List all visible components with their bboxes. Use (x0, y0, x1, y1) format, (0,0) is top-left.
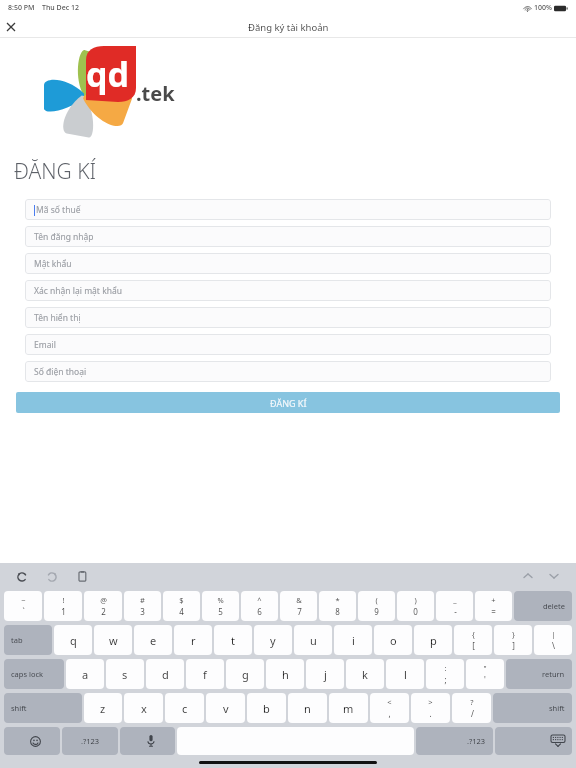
button[interactable]: > (411, 693, 450, 723)
staticText: 5 (218, 606, 223, 617)
staticText: 2 (101, 606, 106, 617)
button[interactable]: b (247, 693, 286, 723)
button[interactable]: t (214, 625, 252, 655)
button[interactable]: a (66, 659, 104, 689)
button[interactable]: Hide keyboard (495, 727, 572, 755)
button[interactable]: Close (0, 16, 22, 38)
button[interactable]: r (174, 625, 212, 655)
button[interactable]: Redo (42, 566, 62, 586)
staticText: shift (11, 703, 27, 713)
button[interactable]: # (124, 591, 161, 621)
button[interactable]: w (94, 625, 132, 655)
staticText: .?123 (467, 736, 486, 746)
staticText: i (352, 633, 355, 648)
button[interactable]: .?123 (416, 727, 493, 755)
staticText: = (491, 606, 496, 617)
button[interactable]: : (426, 659, 464, 689)
staticText: , (388, 708, 391, 719)
staticText: ~ (21, 595, 26, 605)
button[interactable]: ! (44, 591, 82, 621)
button[interactable]: } (494, 625, 532, 655)
button[interactable]: Dictate (120, 727, 175, 755)
button[interactable]: ~ (4, 591, 42, 621)
staticText: " (483, 663, 487, 673)
button[interactable]: _ (436, 591, 473, 621)
button[interactable]: @ (84, 591, 122, 621)
button[interactable]: y (254, 625, 292, 655)
button[interactable]: tab (4, 625, 52, 655)
button[interactable]: & (280, 591, 317, 621)
button[interactable]: j (306, 659, 344, 689)
button[interactable]: h (266, 659, 304, 689)
button[interactable]: $ (163, 591, 200, 621)
button[interactable]: Emoji (4, 727, 60, 755)
staticText: 8 (335, 606, 340, 617)
button[interactable]: Email (25, 334, 551, 355)
staticText: : (444, 663, 447, 673)
button[interactable]: .?123 (62, 727, 118, 755)
button[interactable]: caps lock (4, 659, 64, 689)
button[interactable]: ( (358, 591, 395, 621)
button[interactable]: f (186, 659, 224, 689)
staticText: z (100, 701, 106, 716)
button[interactable]: + (475, 591, 512, 621)
button[interactable]: Previous field (518, 566, 538, 586)
button[interactable]: s (106, 659, 144, 689)
button[interactable]: m (329, 693, 368, 723)
button[interactable]: p (414, 625, 452, 655)
staticText: % (217, 595, 224, 605)
staticText: x (141, 701, 147, 716)
button[interactable]: Mã số thuế (25, 199, 551, 220)
button[interactable]: Next field (544, 566, 564, 586)
button[interactable]: shift (493, 693, 572, 723)
button[interactable]: * (319, 591, 356, 621)
button[interactable]: Paste (72, 566, 92, 586)
button[interactable]: d (146, 659, 184, 689)
staticText: c (182, 701, 188, 716)
button[interactable]: c (165, 693, 204, 723)
button[interactable]: % (202, 591, 239, 621)
staticText: { (472, 629, 475, 639)
button[interactable]: | (534, 625, 572, 655)
button[interactable]: < (370, 693, 409, 723)
button[interactable]: ) (397, 591, 434, 621)
button[interactable]: q (54, 625, 92, 655)
button[interactable]: ? (452, 693, 491, 723)
button[interactable]: shift (4, 693, 82, 723)
button[interactable]: e (134, 625, 172, 655)
staticText: f (203, 667, 207, 682)
staticText: Tên hiển thị (34, 312, 81, 324)
button[interactable]: k (346, 659, 384, 689)
button[interactable]: i (334, 625, 372, 655)
button[interactable]: u (294, 625, 332, 655)
staticText: Đăng ký tài khoản (248, 21, 329, 34)
staticText: ( (375, 595, 378, 605)
button[interactable]: Xác nhận lại mật khẩu (25, 280, 551, 301)
button[interactable]: l (386, 659, 424, 689)
staticText: r (191, 633, 196, 648)
button[interactable]: Tên hiển thị (25, 307, 551, 328)
button[interactable]: ^ (241, 591, 278, 621)
button[interactable]: v (206, 693, 245, 723)
staticText: Email (34, 339, 56, 351)
staticText: Tên đăng nhập (34, 231, 94, 243)
button[interactable]: Số điện thoại (25, 361, 551, 382)
button[interactable]: o (374, 625, 412, 655)
button[interactable]: Tên đăng nhập (25, 226, 551, 247)
button[interactable]: " (466, 659, 504, 689)
button[interactable]: z (84, 693, 122, 723)
staticText: ĐĂNG KÍ (270, 397, 307, 409)
button[interactable]: { (454, 625, 492, 655)
button[interactable]: ĐĂNG KÍ (16, 392, 560, 413)
button[interactable]: x (124, 693, 163, 723)
button[interactable]: return (506, 659, 572, 689)
button[interactable]: delete (514, 591, 572, 621)
button[interactable]: g (226, 659, 264, 689)
staticText: 100% (534, 3, 552, 13)
button[interactable]: n (288, 693, 327, 723)
button[interactable]: Mật khẩu (25, 253, 551, 274)
button[interactable]: Undo (12, 566, 32, 586)
staticText: $ (179, 595, 184, 605)
staticText: a (82, 667, 89, 682)
